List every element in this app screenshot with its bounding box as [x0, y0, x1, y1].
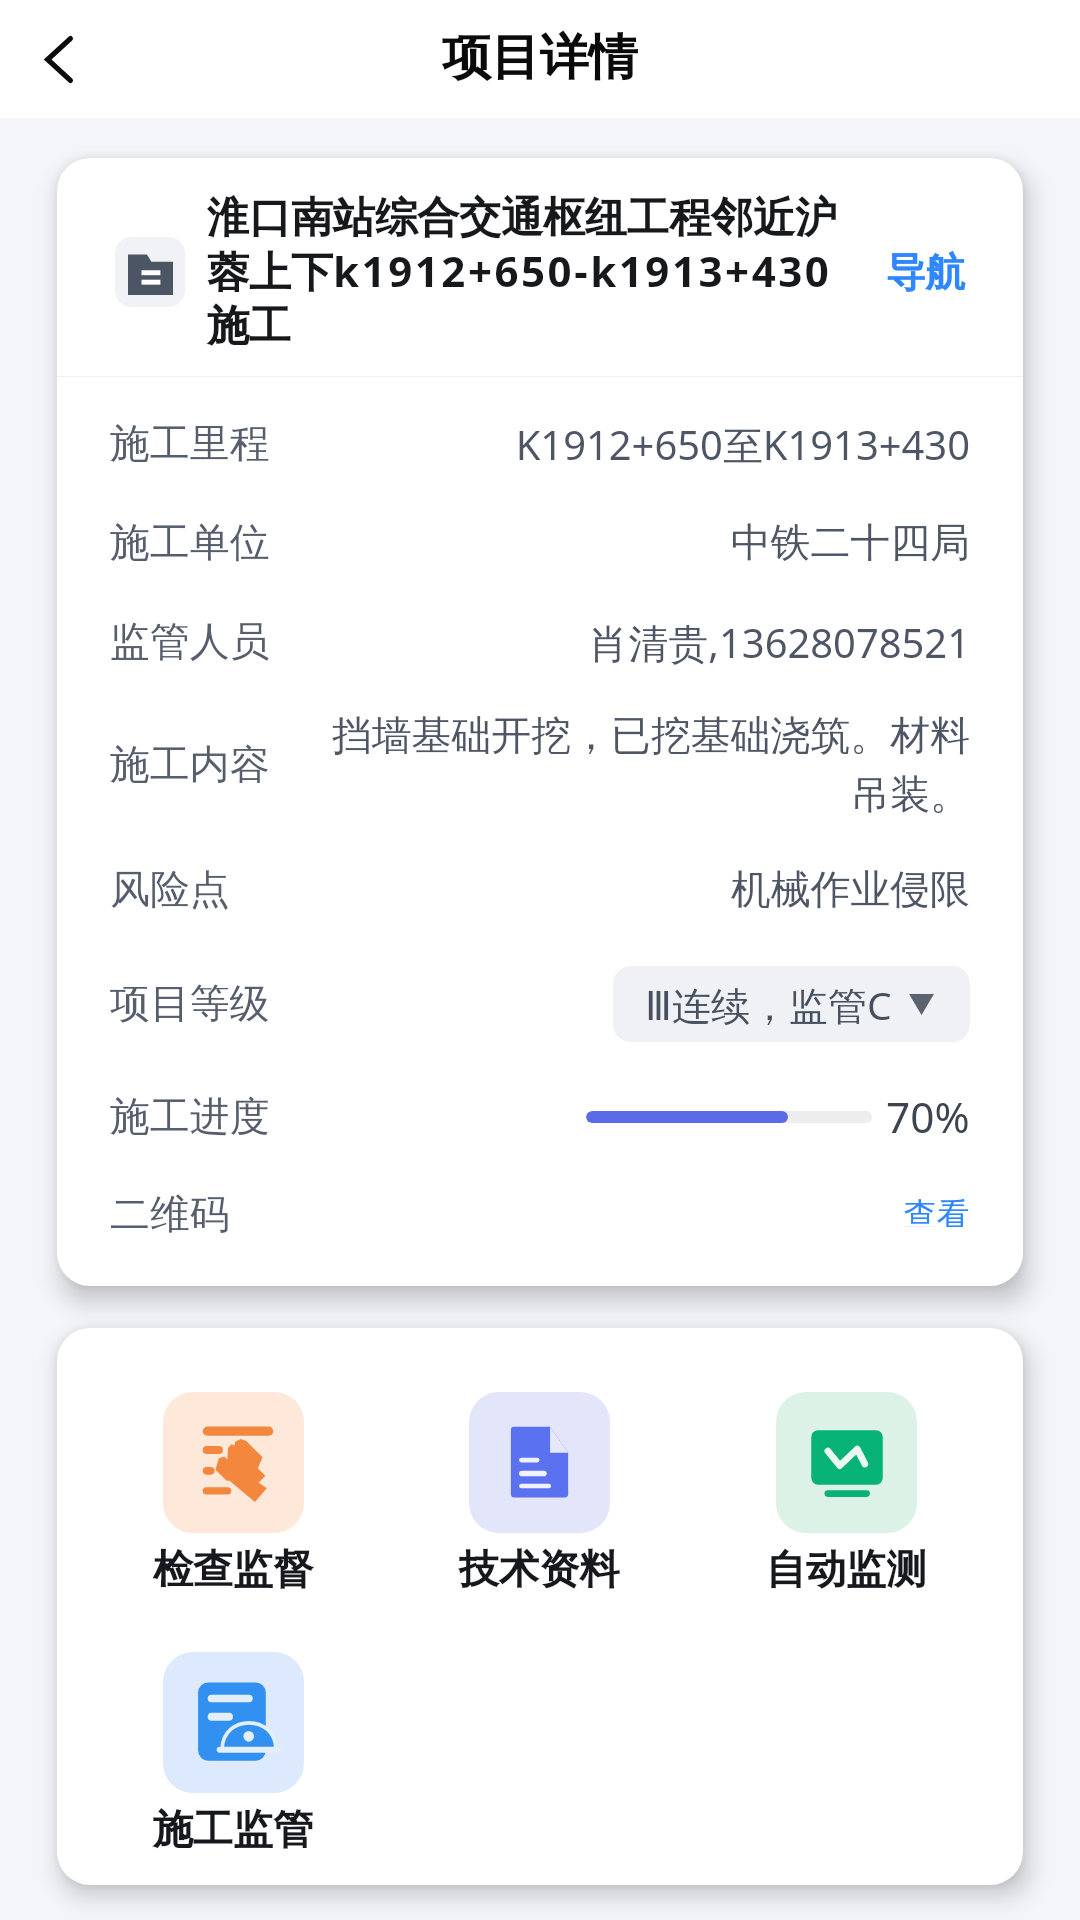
staticText: 施工内容 — [110, 740, 270, 790]
button[interactable]: 检查监督 — [80, 1392, 386, 1594]
staticText: 施工监管 — [153, 1804, 314, 1854]
staticText: K1912+650至K1913+430 — [330, 417, 970, 471]
staticText: 自动监测 — [766, 1544, 927, 1594]
staticText: 风险点 — [110, 865, 230, 915]
staticText: 施工里程 — [110, 419, 270, 469]
staticText: 查看 — [904, 1195, 970, 1227]
staticText: 技术资料 — [459, 1544, 620, 1594]
button[interactable]: Ⅲ连续，监管C — [613, 966, 970, 1042]
staticText: 机械作业侵限 — [290, 865, 970, 915]
staticText: 挡墙基础开挖，已挖基础浇筑。材料吊装。 — [330, 711, 970, 820]
button[interactable]: 技术资料 — [386, 1392, 693, 1594]
staticText: Ⅲ连续，监管C — [645, 978, 892, 1031]
button[interactable]: 施工监管 — [80, 1652, 386, 1854]
staticText: 施工单位 — [110, 518, 270, 568]
staticText: 项目详情 — [442, 27, 638, 89]
button[interactable]: 导航 — [874, 233, 978, 313]
staticText: 导航 — [886, 248, 966, 298]
button[interactable]: 自动监测 — [693, 1392, 1000, 1594]
staticText: 二维码 — [110, 1190, 230, 1240]
button[interactable]: Back — [2, 2, 116, 116]
staticText: 70% — [886, 1088, 970, 1146]
staticText: 肖清贵,13628078521 — [330, 615, 970, 669]
staticText: 中铁二十四局 — [330, 518, 970, 568]
staticText: 项目等级 — [110, 979, 270, 1029]
staticText: 监管人员 — [110, 617, 270, 667]
staticText: 检查监督 — [153, 1544, 314, 1594]
staticText: 淮口南站综合交通枢纽工程邻近沪 蓉上下k1912+650-k1913+430 施… — [207, 192, 852, 353]
staticText: 施工进度 — [110, 1092, 270, 1142]
button[interactable]: 查看 — [889, 1180, 985, 1242]
